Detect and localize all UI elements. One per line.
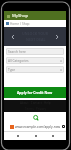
button[interactable]: Apply for Credit Now: [4, 87, 66, 98]
staticText: MyShop: [12, 13, 29, 19]
button[interactable]: Next: [53, 33, 61, 41]
staticText: Home / Shop: [10, 22, 30, 26]
staticText: Search here: [8, 50, 26, 54]
button[interactable]: Recents: [48, 132, 57, 140]
staticText: UNLOCK YOUR: [22, 31, 49, 36]
staticText: Apply for Credit Now: [17, 90, 53, 95]
button[interactable]: Search here: [6, 48, 64, 55]
staticText: NEXT DEAL: [26, 37, 46, 42]
button[interactable]: Back: [13, 132, 22, 140]
button[interactable]: Search: [31, 113, 40, 122]
button[interactable]: Previous: [9, 33, 17, 41]
staticText: About Contact Help: [20, 101, 51, 105]
staticText: www.example.com/apply-now: [15, 125, 61, 129]
button[interactable]: Home: [31, 132, 40, 140]
button[interactable]: www.example.com/apply-now: [4, 122, 66, 131]
staticText: All Categories: [8, 59, 29, 63]
staticText: Type: [8, 68, 16, 72]
button[interactable]: Tabs: [61, 124, 66, 129]
button[interactable]: Menu: [6, 14, 10, 18]
button[interactable]: All Categories: [6, 57, 64, 64]
button[interactable]: Type: [6, 66, 64, 73]
